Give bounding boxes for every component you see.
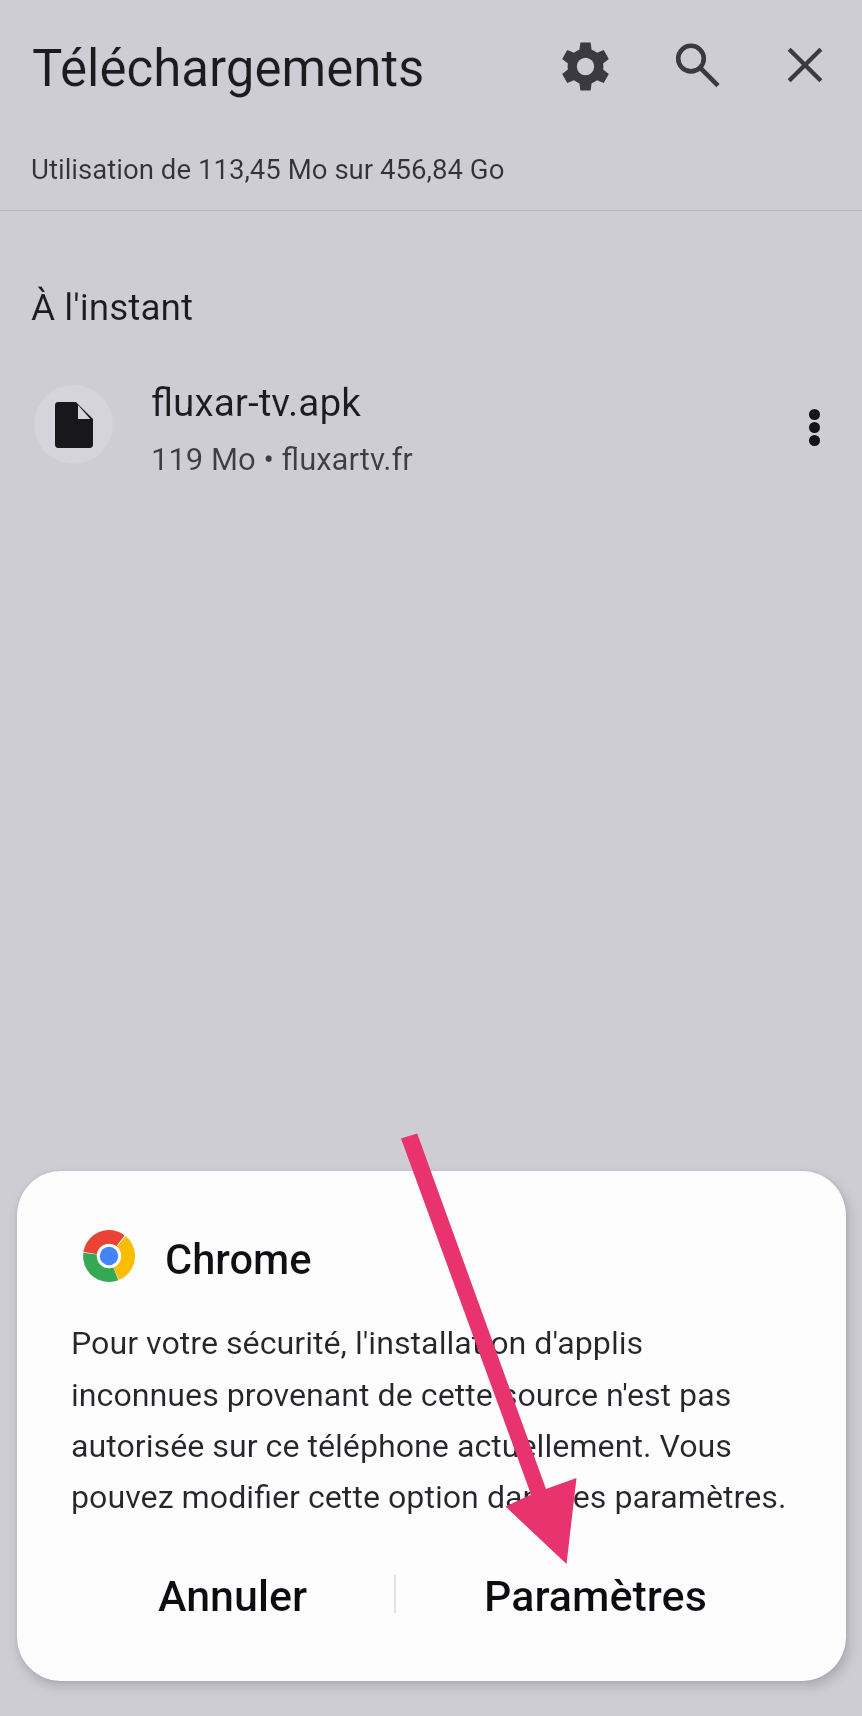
staticText: Utilisation de 113,45 Mo sur 456,84 Go xyxy=(31,153,505,185)
button[interactable]: Rechercher xyxy=(648,15,744,111)
staticText: Annuler xyxy=(158,1571,308,1621)
staticText: Pour votre sécurité, l'installation d'ap… xyxy=(71,1324,815,1516)
staticText: À l'instant xyxy=(31,286,194,329)
button[interactable]: Annuler xyxy=(71,1540,395,1652)
staticText: fluxar-tv.apk xyxy=(151,380,361,425)
staticText: Téléchargements xyxy=(32,39,425,99)
button[interactable]: Plus d'options xyxy=(766,379,862,475)
staticText: 119 Mo • fluxartv.fr xyxy=(151,441,413,477)
button[interactable]: Fermer xyxy=(757,17,853,113)
staticText: Chrome xyxy=(165,1235,312,1284)
staticText: Paramètres xyxy=(484,1571,707,1621)
button[interactable]: Paramètres xyxy=(537,18,633,114)
button[interactable]: Paramètres xyxy=(397,1540,793,1652)
button[interactable]: fluxar-tv.apk xyxy=(0,373,862,581)
